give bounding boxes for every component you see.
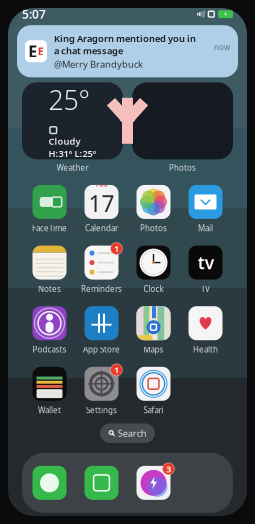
- staticText: Cloudy: [48, 135, 80, 147]
- staticText: Podcasts: [32, 344, 66, 355]
- staticText: Photos: [169, 162, 196, 173]
- button[interactable]: App Store: [75, 305, 127, 355]
- button[interactable]: Wallet: [23, 366, 75, 415]
- button[interactable]: Photos: [127, 184, 179, 234]
- staticText: Maps: [143, 344, 163, 355]
- button[interactable]: Search: [100, 423, 155, 443]
- button[interactable]: Messenger: [136, 466, 170, 500]
- staticText: Health: [193, 344, 218, 355]
- staticText: H:31° L:25°: [48, 147, 96, 160]
- staticText: Search: [118, 427, 147, 439]
- staticText: 3: [166, 463, 171, 475]
- button[interactable]: 1: [75, 245, 127, 294]
- button[interactable]: Notes: [23, 245, 75, 294]
- button[interactable]: FaceTime: [23, 184, 75, 234]
- button[interactable]: E: [17, 25, 238, 77]
- staticText: tv: [198, 251, 214, 274]
- staticText: 1: [114, 242, 119, 255]
- staticText: Weather: [56, 162, 88, 173]
- staticText: King Aragorn mentioned you in a chat mes…: [54, 32, 196, 57]
- button[interactable]: [179, 245, 231, 294]
- staticText: Mail: [198, 223, 213, 234]
- staticText: Reminders: [81, 284, 122, 294]
- button[interactable]: Clock: [127, 245, 179, 294]
- staticText: E: [28, 41, 37, 62]
- staticText: @Merry Brandybuck: [54, 58, 143, 70]
- button[interactable]: TUE: [75, 184, 127, 234]
- button[interactable]: Health: [179, 305, 231, 355]
- staticText: FaceTime: [32, 223, 67, 234]
- staticText: 17: [88, 188, 114, 218]
- staticText: TUE: [95, 179, 108, 188]
- staticText: App Store: [83, 344, 120, 355]
- staticText: TV: [201, 284, 210, 294]
- staticText: Clock: [143, 284, 163, 294]
- staticText: Wallet: [38, 405, 61, 415]
- staticText: Settings: [86, 405, 117, 415]
- staticText: 1: [114, 364, 119, 376]
- button[interactable]: Messages: [32, 466, 66, 500]
- staticText: Safari: [143, 405, 163, 415]
- button[interactable]: Maps: [127, 305, 179, 355]
- button[interactable]: Mail: [179, 184, 231, 234]
- staticText: now: [214, 42, 230, 52]
- staticText: 25°: [48, 82, 89, 117]
- staticText: Notes: [38, 284, 61, 294]
- staticText: E: [38, 44, 44, 58]
- staticText: Calendar: [85, 223, 118, 234]
- button[interactable]: Podcasts: [23, 305, 75, 355]
- button[interactable]: Safari: [127, 366, 179, 415]
- staticText: Photos: [140, 223, 167, 234]
- button[interactable]: Photos widget: [132, 82, 233, 159]
- button[interactable]: 25°: [22, 82, 123, 159]
- button[interactable]: Phone: [84, 466, 118, 500]
- button[interactable]: 1: [75, 366, 127, 415]
- staticText: 5:07: [22, 6, 46, 22]
